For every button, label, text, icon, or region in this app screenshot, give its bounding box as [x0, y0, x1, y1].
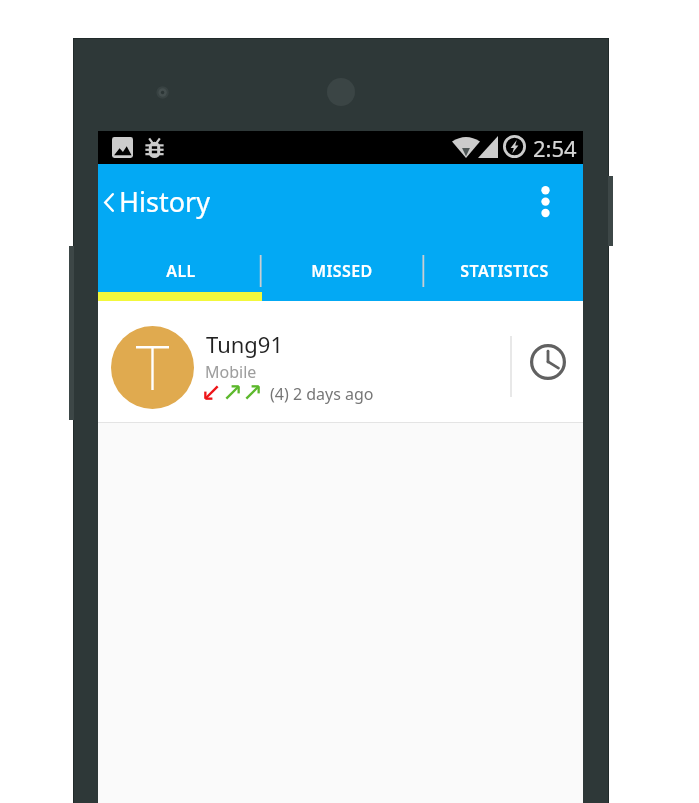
staticText: STATISTICS — [460, 260, 549, 282]
button[interactable]: MISSED — [259, 244, 421, 301]
button[interactable]: ALL — [98, 244, 259, 301]
button[interactable]: Call details — [512, 301, 583, 422]
staticText: (4) 2 days ago — [270, 383, 374, 405]
button[interactable]: More options — [525, 178, 565, 226]
button[interactable]: STATISTICS — [421, 244, 583, 301]
staticText: Mobile — [205, 361, 257, 383]
staticText: ALL — [166, 260, 196, 282]
button[interactable]: Tung91 — [98, 301, 583, 422]
staticText: MISSED — [311, 260, 373, 282]
button[interactable]: History — [100, 179, 216, 226]
staticText: History — [119, 183, 210, 220]
staticText: 2:54 — [533, 133, 577, 163]
staticText: Tung91 — [206, 329, 284, 359]
